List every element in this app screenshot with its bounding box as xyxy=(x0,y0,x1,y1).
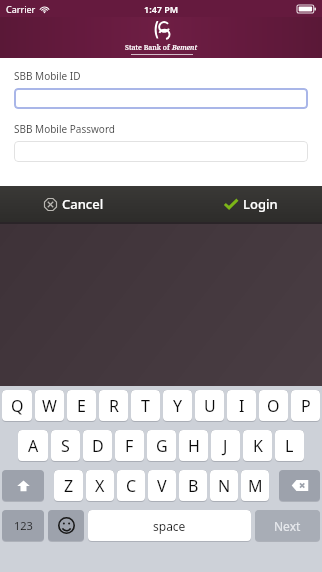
button[interactable]: C xyxy=(117,470,145,501)
button[interactable]: W xyxy=(35,390,64,421)
staticText: S xyxy=(61,435,70,457)
staticText: Cancel xyxy=(62,195,104,213)
button[interactable]: F xyxy=(115,430,144,461)
staticText: Bement xyxy=(172,43,198,53)
staticText: H xyxy=(188,435,200,457)
staticText: U xyxy=(204,395,216,417)
staticText: 1:47 PM xyxy=(144,3,179,15)
staticText: N xyxy=(218,475,231,497)
button[interactable]: X xyxy=(86,470,114,501)
staticText: K xyxy=(253,435,263,457)
staticText: SBB Mobile Password xyxy=(14,122,115,136)
staticText: G xyxy=(156,435,168,457)
button[interactable]: P xyxy=(291,390,320,421)
staticText: W xyxy=(42,395,57,417)
staticText: SBB Mobile ID xyxy=(14,69,81,83)
staticText: space xyxy=(153,518,186,534)
button[interactable]: Cancel xyxy=(44,195,104,213)
staticText: D xyxy=(92,435,104,457)
staticText: X xyxy=(95,475,105,497)
button[interactable]: H xyxy=(179,430,208,461)
button[interactable]: 123 xyxy=(2,510,44,541)
button[interactable]: B xyxy=(179,470,207,501)
staticText: R xyxy=(109,395,119,417)
button[interactable]: A xyxy=(18,430,48,461)
staticText: Y xyxy=(173,395,183,417)
button[interactable] xyxy=(14,141,308,162)
button[interactable]: S xyxy=(51,430,80,461)
button[interactable]: J xyxy=(211,430,240,461)
staticText: F xyxy=(125,435,134,457)
staticText: A xyxy=(28,435,39,457)
button[interactable]: M xyxy=(241,470,269,501)
staticText: Q xyxy=(11,395,24,417)
staticText: C xyxy=(126,475,137,497)
staticText: L xyxy=(285,435,294,457)
button[interactable]: Z xyxy=(54,470,83,501)
staticText: E xyxy=(77,395,86,417)
staticText: V xyxy=(157,475,167,497)
staticText: B xyxy=(188,475,199,497)
button[interactable]: E xyxy=(67,390,96,421)
staticText: State Bank of xyxy=(125,43,172,53)
button[interactable]: R xyxy=(99,390,128,421)
staticText: J xyxy=(223,435,228,457)
button[interactable]: L xyxy=(275,430,304,461)
button[interactable]: Login xyxy=(224,195,278,213)
button[interactable]: U xyxy=(195,390,224,421)
button[interactable]: I xyxy=(227,390,256,421)
button[interactable]: Q xyxy=(2,390,32,421)
button[interactable]: G xyxy=(147,430,176,461)
button[interactable]: O xyxy=(259,390,288,421)
staticText: Next xyxy=(274,518,301,534)
button[interactable]: Y xyxy=(163,390,192,421)
button[interactable]: K xyxy=(243,430,272,461)
staticText: Z xyxy=(64,475,74,497)
staticText: T xyxy=(141,395,150,417)
button[interactable]: Next xyxy=(255,510,320,541)
button[interactable]: space xyxy=(88,510,251,541)
staticText: Login xyxy=(243,195,278,213)
staticText: M xyxy=(248,475,263,497)
button[interactable] xyxy=(14,88,308,109)
button[interactable]: Backspace xyxy=(279,470,320,501)
button[interactable]: N xyxy=(210,470,238,501)
staticText: P xyxy=(301,395,311,417)
button[interactable]: Emoji xyxy=(48,510,84,541)
staticText: I xyxy=(239,395,245,417)
staticText: O xyxy=(267,395,280,417)
button[interactable]: D xyxy=(83,430,112,461)
button[interactable]: T xyxy=(131,390,160,421)
button[interactable]: V xyxy=(148,470,176,501)
staticText: 123 xyxy=(14,518,33,533)
button[interactable]: Shift xyxy=(2,470,44,501)
staticText: Carrier xyxy=(6,3,36,15)
